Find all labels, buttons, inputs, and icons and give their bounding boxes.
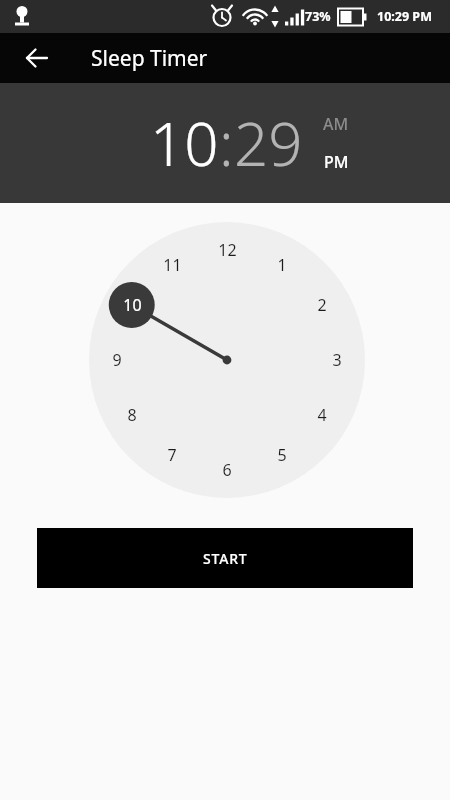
staticText: PM — [324, 151, 349, 173]
staticText: 10 — [150, 102, 219, 184]
staticText: 2 — [317, 294, 327, 316]
button[interactable]: 10 — [114, 292, 150, 318]
button[interactable]: 2 — [304, 292, 340, 318]
button[interactable]: START — [37, 528, 413, 588]
button[interactable]: 12 — [209, 237, 245, 263]
button[interactable]: 4 — [304, 402, 340, 428]
button[interactable]: 6 — [209, 457, 245, 483]
staticText: 9 — [112, 349, 122, 371]
staticText: 11 — [163, 254, 182, 276]
staticText: 12 — [218, 239, 237, 261]
button[interactable]: 10 — [150, 102, 219, 184]
staticText: 10:29 PM — [377, 8, 432, 25]
staticText: 8 — [127, 404, 137, 426]
button[interactable]: 29 — [234, 102, 303, 184]
button[interactable]: 7 — [154, 442, 190, 468]
staticText: Sleep Timer — [91, 44, 208, 73]
staticText: 7 — [167, 444, 177, 466]
button[interactable]: 1 — [264, 252, 300, 278]
staticText: 73% — [305, 8, 331, 25]
staticText: AM — [323, 113, 349, 135]
staticText: 1 — [277, 254, 287, 276]
button[interactable]: PM — [320, 149, 353, 175]
staticText: 29 — [234, 102, 303, 184]
staticText: 6 — [222, 459, 232, 481]
staticText: : — [219, 102, 234, 184]
button[interactable]: AM — [319, 111, 353, 137]
button[interactable]: 11 — [154, 252, 190, 278]
button[interactable]: 3 — [319, 347, 355, 373]
staticText: 10 — [123, 294, 142, 316]
staticText: 5 — [277, 444, 287, 466]
staticText: START — [203, 549, 248, 568]
button[interactable]: 5 — [264, 442, 300, 468]
button[interactable]: 8 — [114, 402, 150, 428]
button[interactable]: Back — [13, 34, 61, 82]
staticText: 3 — [332, 349, 342, 371]
staticText: 4 — [317, 404, 327, 426]
button[interactable]: 9 — [99, 347, 135, 373]
